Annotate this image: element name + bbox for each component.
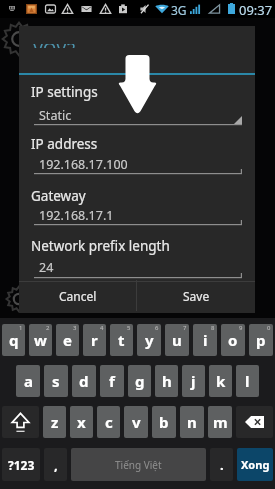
button[interactable]: 3 bbox=[56, 324, 79, 356]
button[interactable]: 2 bbox=[29, 324, 52, 356]
staticText: e bbox=[63, 330, 72, 350]
staticText: 0 bbox=[267, 324, 271, 332]
button[interactable]: , bbox=[44, 448, 67, 481]
button[interactable]: 5 bbox=[110, 324, 133, 356]
staticText: 3G bbox=[171, 2, 187, 18]
button[interactable]: Shift bbox=[2, 406, 39, 438]
button[interactable]: Backspace bbox=[236, 406, 273, 438]
button[interactable]: Xong bbox=[237, 448, 273, 481]
button[interactable]: 8 bbox=[193, 324, 217, 356]
staticText: 7 bbox=[183, 324, 187, 332]
staticText: y bbox=[145, 330, 154, 350]
staticText: l bbox=[245, 371, 250, 391]
staticText: 09:37 bbox=[239, 1, 273, 19]
button[interactable]: f bbox=[100, 365, 124, 397]
staticText: Save bbox=[183, 288, 210, 304]
staticText: 5 bbox=[127, 324, 131, 332]
button[interactable]: 0 bbox=[249, 324, 273, 356]
button[interactable]: l bbox=[236, 365, 259, 397]
button[interactable]: s bbox=[44, 365, 68, 397]
button[interactable]: . bbox=[210, 448, 233, 481]
button[interactable]: a bbox=[16, 365, 40, 397]
staticText: r bbox=[91, 330, 98, 350]
staticText: f bbox=[109, 371, 115, 391]
staticText: 24 bbox=[39, 259, 54, 276]
button[interactable]: h bbox=[155, 365, 178, 397]
staticText: . bbox=[220, 456, 224, 474]
staticText: Tiếng Việt bbox=[115, 458, 162, 472]
button[interactable]: m bbox=[208, 406, 232, 438]
button[interactable]: Cancel bbox=[19, 280, 136, 311]
staticText: , bbox=[54, 456, 58, 474]
staticText: 2 bbox=[46, 324, 50, 332]
button[interactable]: Save bbox=[137, 280, 255, 311]
staticText: d bbox=[79, 371, 89, 391]
staticText: u bbox=[172, 330, 182, 350]
button[interactable]: Tiếng Việt bbox=[71, 448, 206, 481]
staticText: 6 bbox=[155, 324, 159, 332]
staticText: n bbox=[187, 412, 197, 432]
button[interactable]: c bbox=[97, 406, 120, 438]
staticText: o bbox=[228, 330, 238, 350]
button[interactable]: j bbox=[182, 365, 205, 397]
button[interactable]: 1 bbox=[2, 324, 25, 356]
button[interactable]: n bbox=[180, 406, 204, 438]
button[interactable]: z bbox=[43, 406, 66, 438]
staticText: x bbox=[77, 412, 86, 432]
button[interactable]: g bbox=[128, 365, 151, 397]
staticText: t bbox=[118, 330, 125, 350]
staticText: 8 bbox=[211, 324, 215, 332]
staticText: Static bbox=[39, 107, 72, 124]
button[interactable]: 6 bbox=[137, 324, 161, 356]
staticText: s bbox=[52, 371, 60, 391]
staticText: m bbox=[213, 412, 228, 432]
staticText: q bbox=[9, 330, 19, 350]
button[interactable]: x bbox=[70, 406, 93, 438]
staticText: g bbox=[135, 371, 145, 391]
button[interactable]: ?123 bbox=[2, 448, 40, 481]
staticText: p bbox=[256, 330, 266, 350]
staticText: 192.168.17.100 bbox=[39, 156, 128, 173]
button[interactable]: 9 bbox=[221, 324, 245, 356]
staticText: a bbox=[24, 371, 33, 391]
staticText: 3 bbox=[73, 324, 77, 332]
staticText: c bbox=[105, 412, 113, 432]
staticText: b bbox=[159, 412, 169, 432]
staticText: k bbox=[216, 371, 226, 391]
staticText: Network prefix length bbox=[31, 237, 170, 255]
staticText: 1 bbox=[19, 324, 23, 332]
staticText: IP settings bbox=[31, 83, 98, 101]
staticText: 9 bbox=[239, 324, 243, 332]
button[interactable]: b bbox=[152, 406, 176, 438]
staticText: h bbox=[162, 371, 172, 391]
staticText: v bbox=[132, 412, 141, 432]
staticText: w bbox=[34, 330, 47, 350]
button[interactable]: k bbox=[209, 365, 232, 397]
staticText: j bbox=[191, 371, 196, 391]
staticText: Gateway bbox=[31, 187, 86, 205]
button[interactable]: 4 bbox=[83, 324, 106, 356]
staticText: i bbox=[203, 330, 208, 350]
button[interactable]: 7 bbox=[165, 324, 189, 356]
staticText: z bbox=[51, 412, 59, 432]
button[interactable]: d bbox=[72, 365, 96, 397]
staticText: 4 bbox=[100, 324, 104, 332]
button[interactable]: v bbox=[124, 406, 148, 438]
staticText: IP address bbox=[31, 135, 98, 153]
staticText: ?123 bbox=[8, 457, 35, 473]
staticText: Cancel bbox=[59, 288, 97, 304]
staticText: VOV2 bbox=[33, 44, 77, 48]
staticText: 192.168.17.1 bbox=[39, 207, 114, 224]
staticText: Xong bbox=[241, 457, 270, 472]
